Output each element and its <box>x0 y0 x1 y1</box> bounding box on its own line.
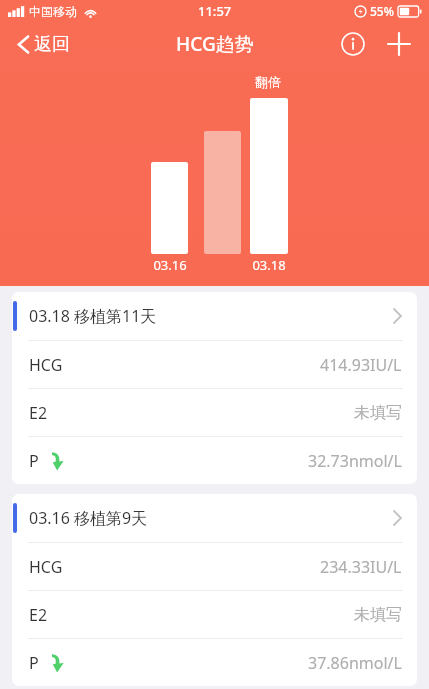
button[interactable]: P <box>12 639 417 686</box>
staticText: 中国移动 <box>29 4 77 19</box>
staticText: 未填写 <box>354 403 402 423</box>
button[interactable]: Info <box>335 26 371 62</box>
button[interactable]: HCG <box>12 341 417 388</box>
staticText: 03.18 移植第11天 <box>29 305 157 327</box>
button[interactable]: 返回 <box>14 29 74 60</box>
staticText: 37.86nmol/L <box>308 652 402 674</box>
button[interactable]: Add <box>381 26 417 62</box>
staticText: P <box>29 450 39 472</box>
staticText: 414.93IU/L <box>320 354 402 376</box>
staticText: E2 <box>29 604 48 626</box>
staticText: 翻倍 <box>255 74 281 90</box>
staticText: 55% <box>370 3 394 19</box>
staticText: P <box>29 652 39 674</box>
staticText: 返回 <box>34 33 70 56</box>
staticText: 32.73nmol/L <box>308 450 402 472</box>
button[interactable]: E2 <box>12 389 417 436</box>
button[interactable]: E2 <box>12 591 417 638</box>
button[interactable]: 03.16 移植第9天 <box>12 494 417 542</box>
staticText: 234.33IU/L <box>320 556 402 578</box>
staticText: 03.18 <box>252 256 286 274</box>
button[interactable]: 03.18 移植第11天 <box>12 292 417 340</box>
staticText: E2 <box>29 402 48 424</box>
staticText: 03.16 <box>153 256 187 274</box>
button[interactable]: P <box>12 437 417 484</box>
staticText: HCG <box>29 354 63 376</box>
staticText: 11:57 <box>198 2 232 20</box>
button[interactable]: HCG <box>12 543 417 590</box>
staticText: 03.16 移植第9天 <box>29 507 148 529</box>
staticText: 未填写 <box>354 605 402 625</box>
staticText: HCG趋势 <box>176 31 254 57</box>
staticText: HCG <box>29 556 63 578</box>
